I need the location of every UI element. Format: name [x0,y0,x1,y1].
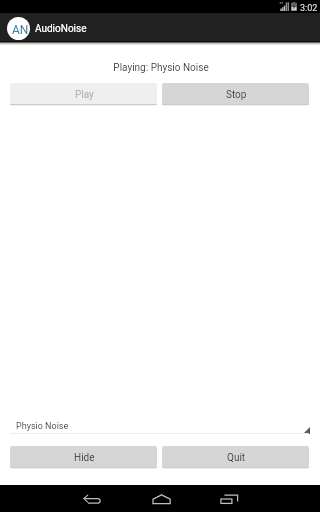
staticText: 3:02 [300,3,318,13]
button[interactable]: Physio Noise [10,416,309,434]
button[interactable]: Recents [208,485,252,512]
staticText: Play [75,89,94,101]
button[interactable]: Stop [162,83,309,106]
staticText: Quit [227,452,246,464]
staticText: AudioNoise [35,23,87,35]
staticText: Hide [74,452,95,464]
button[interactable]: Quit [162,446,309,469]
button[interactable]: Hide [10,446,157,469]
button[interactable]: Play [10,83,157,106]
button[interactable]: Home [140,485,184,512]
staticText: Physio Noise [16,421,69,432]
staticText: Playing: Physio Noise [1,62,320,74]
button[interactable]: Back [71,485,115,512]
staticText: Stop [226,89,247,101]
staticText: AN [12,23,29,37]
